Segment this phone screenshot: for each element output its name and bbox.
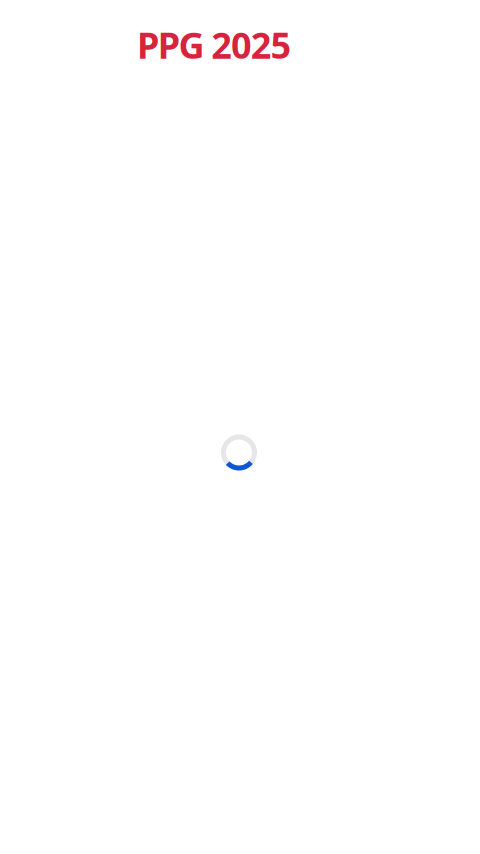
staticText: PPG 2025 (137, 21, 292, 69)
